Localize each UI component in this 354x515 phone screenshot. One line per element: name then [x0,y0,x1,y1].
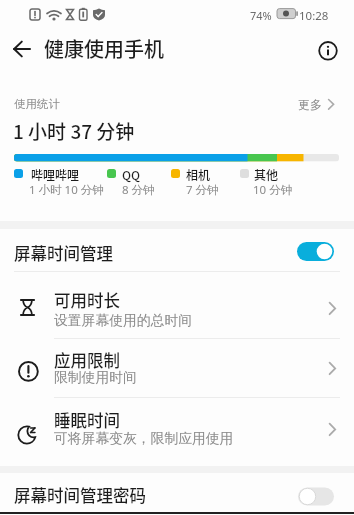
staticText: 可用时长 [54,288,120,312]
staticText: 相机 [186,166,211,183]
staticText: 使用统计 [14,97,60,111]
staticText: 更多 [298,97,322,112]
staticText: 其他 [254,166,279,183]
button[interactable]: 可用时长 [0,272,354,338]
button[interactable]: 更多 [290,93,346,115]
staticText: 限制使用时间 [54,369,137,386]
button[interactable]: 应用限制 [0,339,354,396]
staticText: 74% [250,8,272,23]
button[interactable]: 屏幕时间管理密码 [0,473,354,512]
staticText: 设置屏幕使用的总时间 [54,312,192,329]
button[interactable]: 屏幕时间管理 [0,229,354,271]
staticText: 7 分钟 [186,182,219,198]
staticText: 10 分钟 [253,182,293,198]
button[interactable]: 睡眠时间 [0,398,354,466]
staticText: 可将屏幕变灰，限制应用使用 [54,430,234,447]
button[interactable] [297,242,334,261]
staticText: 哔哩哔哩 [31,166,80,183]
staticText: 应用限制 [54,348,120,372]
staticText: 睡眠时间 [54,408,120,432]
staticText: 10:28 [299,8,329,24]
staticText: 屏幕时间管理 [14,241,113,265]
staticText: QQ [122,166,141,183]
button[interactable] [13,40,31,58]
button[interactable] [318,41,339,62]
button[interactable] [298,487,335,506]
staticText: 健康使用手机 [44,34,164,63]
staticText: 1 小时 10 分钟 [29,182,104,198]
staticText: 屏幕时间管理密码 [14,483,146,507]
staticText: 8 分钟 [122,182,155,198]
staticText: 1 小时 37 分钟 [13,117,135,145]
